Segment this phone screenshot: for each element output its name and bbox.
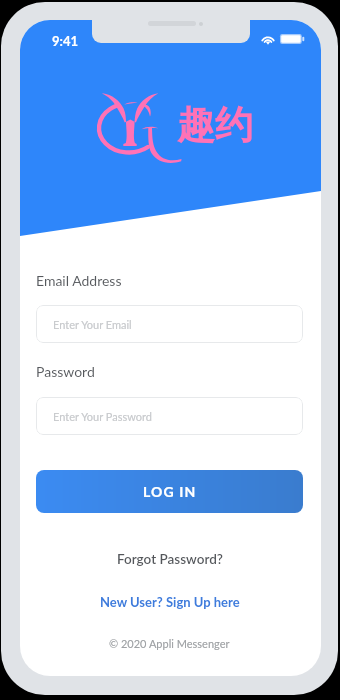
- staticText: Forgot Password?: [117, 551, 223, 567]
- button[interactable]: New User? Sign Up here: [36, 592, 303, 612]
- staticText: Enter Your Email: [53, 318, 132, 331]
- staticText: New User? Sign Up here: [100, 594, 240, 610]
- staticText: 9:41: [52, 33, 78, 49]
- staticText: LOG IN: [143, 483, 197, 500]
- button[interactable]: Enter Your Email: [36, 305, 303, 343]
- button[interactable]: LOG IN: [36, 470, 303, 513]
- staticText: Email Address: [36, 272, 122, 289]
- staticText: 趣约: [177, 101, 253, 149]
- button[interactable]: Forgot Password?: [36, 548, 303, 570]
- staticText: Password: [36, 363, 95, 380]
- staticText: Enter Your Password: [53, 410, 152, 423]
- staticText: © 2020 Appli Messenger: [109, 637, 230, 650]
- button[interactable]: Enter Your Password: [36, 397, 303, 435]
